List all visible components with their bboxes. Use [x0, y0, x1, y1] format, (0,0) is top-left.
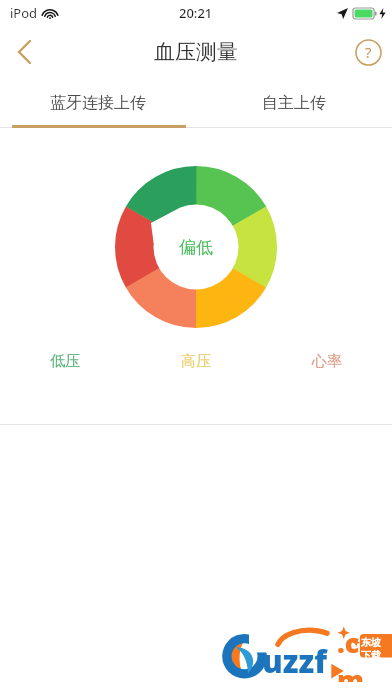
button[interactable]: 高压	[130, 346, 261, 376]
staticText: 心率	[312, 352, 342, 371]
button[interactable]: 心率	[261, 346, 392, 376]
staticText: .com	[337, 624, 388, 682]
staticText: 高压	[181, 352, 211, 371]
staticText: 20:21	[179, 4, 213, 22]
button[interactable]: Help	[344, 28, 392, 76]
staticText: 低压	[50, 352, 80, 371]
staticText: 自主上传	[262, 93, 326, 113]
button[interactable]: 低压	[0, 346, 130, 376]
staticText: ?	[365, 42, 372, 62]
staticText: iPod	[10, 4, 38, 22]
staticText: uzzf	[262, 640, 328, 682]
staticText: 血压测量	[154, 39, 238, 65]
staticText: 东坡下载	[361, 636, 388, 662]
button[interactable]: 自主上传	[196, 78, 392, 128]
button[interactable]: Back	[0, 28, 48, 76]
staticText: 偏低	[179, 237, 213, 258]
staticText: 蓝牙连接上传	[50, 93, 146, 113]
button[interactable]: 蓝牙连接上传	[0, 78, 196, 128]
